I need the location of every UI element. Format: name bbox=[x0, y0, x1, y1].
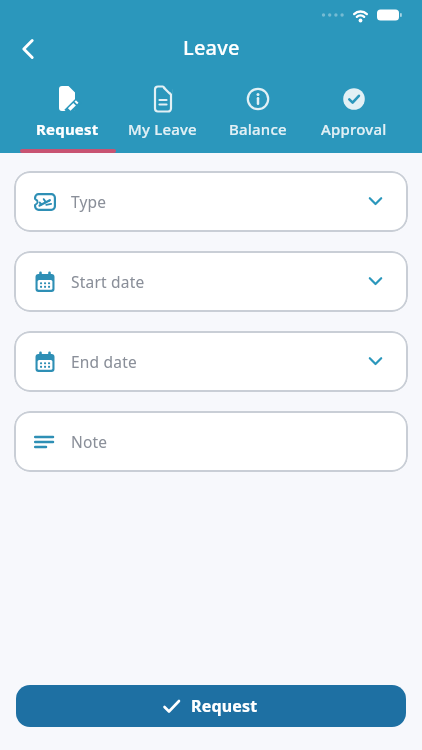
staticText: Request bbox=[191, 695, 258, 717]
staticText: Leave bbox=[183, 34, 240, 61]
button[interactable]: My Leave bbox=[115, 68, 210, 153]
staticText: Balance bbox=[229, 119, 287, 139]
button[interactable]: Balance bbox=[210, 68, 306, 153]
button[interactable]: End date bbox=[14, 331, 408, 392]
button[interactable]: Request bbox=[16, 685, 406, 727]
staticText: Request bbox=[36, 119, 99, 139]
staticText: Type bbox=[71, 191, 107, 212]
staticText: Note bbox=[71, 431, 108, 452]
button[interactable]: Type bbox=[14, 171, 408, 232]
button[interactable]: Start date bbox=[14, 251, 408, 312]
staticText: My Leave bbox=[128, 119, 197, 139]
button[interactable]: Note bbox=[14, 411, 408, 472]
button[interactable]: Approval bbox=[306, 68, 402, 153]
staticText: Approval bbox=[321, 119, 387, 139]
button[interactable] bbox=[14, 35, 42, 63]
button[interactable]: Request bbox=[20, 68, 115, 153]
staticText: End date bbox=[71, 351, 137, 372]
staticText: Start date bbox=[71, 271, 145, 292]
